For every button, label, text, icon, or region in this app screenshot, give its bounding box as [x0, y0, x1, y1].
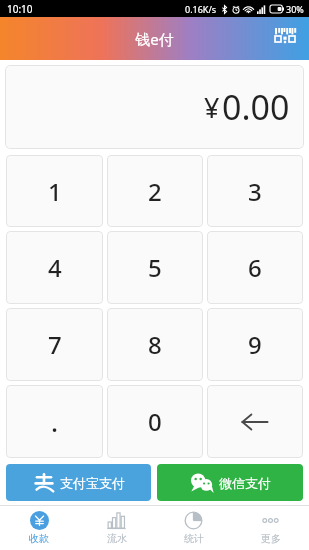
staticText: 更多 — [261, 532, 281, 545]
staticText: 10:10 — [7, 2, 33, 16]
button[interactable]: 8 — [107, 308, 203, 381]
staticText: 2 — [148, 175, 162, 208]
button[interactable]: Scan QR code — [271, 24, 301, 54]
button[interactable]: ¥ — [5, 65, 304, 149]
staticText: 6 — [248, 251, 262, 284]
button[interactable]: 支付宝支付 — [6, 464, 151, 501]
staticText: . — [51, 404, 59, 439]
button[interactable]: 微信支付 — [157, 464, 303, 501]
staticText: 支付宝支付 — [60, 475, 125, 491]
staticText: 9 — [248, 328, 262, 361]
button[interactable]: . — [6, 385, 103, 458]
staticText: 0 — [148, 405, 162, 438]
staticText: 微信支付 — [219, 475, 271, 491]
button[interactable]: 收款 — [0, 506, 78, 550]
staticText: 流水 — [107, 532, 127, 545]
staticText: 1 — [48, 175, 62, 208]
staticText: 8 — [148, 328, 162, 361]
staticText: 7 — [48, 328, 62, 361]
button[interactable]: 1 — [6, 155, 103, 227]
button[interactable]: 5 — [107, 231, 203, 304]
button[interactable]: Backspace — [207, 385, 303, 458]
staticText: 4 — [48, 251, 62, 284]
button[interactable]: 更多 — [232, 506, 309, 550]
staticText: 3 — [248, 175, 262, 208]
staticText: 0.00 — [222, 84, 290, 130]
button[interactable]: 流水 — [78, 506, 155, 550]
staticText: 5 — [148, 251, 162, 284]
button[interactable]: 0 — [107, 385, 203, 458]
button[interactable]: 统计 — [155, 506, 232, 550]
staticText: 30% — [286, 3, 304, 15]
button[interactable]: 6 — [207, 231, 303, 304]
staticText: 钱e付 — [135, 29, 174, 49]
button[interactable]: 4 — [6, 231, 103, 304]
staticText: 收款 — [29, 532, 49, 545]
staticText: 0.16K/s — [185, 3, 217, 15]
button[interactable]: 3 — [207, 155, 303, 227]
button[interactable]: 2 — [107, 155, 203, 227]
button[interactable]: 7 — [6, 308, 103, 381]
staticText: ¥ — [204, 89, 220, 126]
button[interactable]: 9 — [207, 308, 303, 381]
staticText: 统计 — [184, 532, 204, 545]
